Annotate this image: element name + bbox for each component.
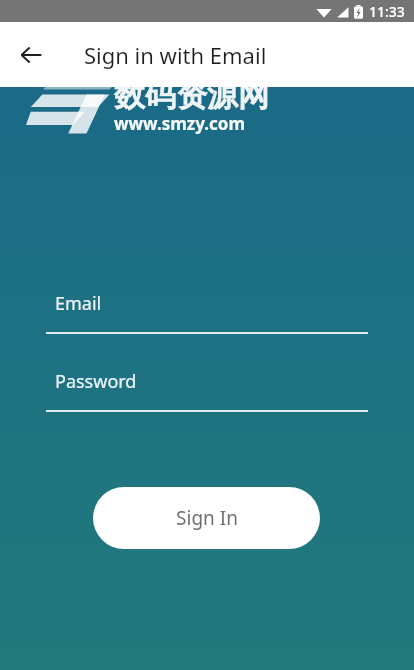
staticText: Password [55, 369, 137, 394]
staticText: Sign In [176, 505, 238, 531]
button[interactable]: Email [46, 291, 368, 334]
button[interactable]: Back [10, 34, 52, 76]
staticText: 11:33 [369, 2, 405, 21]
button[interactable]: Sign In [93, 487, 320, 549]
staticText: Email [55, 291, 102, 316]
staticText: 数码资源网 [114, 76, 269, 115]
staticText: Sign in with Email [84, 40, 267, 70]
staticText: www.smzy.com [114, 112, 246, 135]
button[interactable]: Password [46, 369, 368, 412]
